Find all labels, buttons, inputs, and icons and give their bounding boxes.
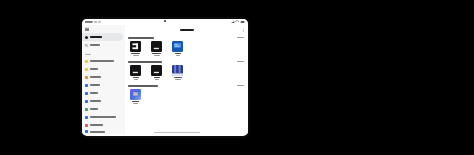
button[interactable]: Open navigation menu xyxy=(82,25,125,33)
button[interactable] xyxy=(171,41,184,56)
button[interactable] xyxy=(150,65,163,80)
button[interactable] xyxy=(82,57,123,65)
button[interactable] xyxy=(82,73,123,81)
button[interactable] xyxy=(82,97,123,105)
button[interactable] xyxy=(236,84,245,87)
button[interactable] xyxy=(82,33,123,41)
button[interactable] xyxy=(171,65,184,80)
button[interactable] xyxy=(236,36,245,39)
button[interactable] xyxy=(150,41,163,56)
button[interactable] xyxy=(82,129,123,134)
button[interactable] xyxy=(82,65,123,73)
button[interactable] xyxy=(236,60,245,63)
button[interactable] xyxy=(82,41,123,49)
button[interactable]: More options xyxy=(241,28,245,32)
button[interactable] xyxy=(129,41,142,56)
button[interactable] xyxy=(82,113,123,121)
button[interactable] xyxy=(129,65,142,80)
button[interactable] xyxy=(82,81,123,89)
button[interactable] xyxy=(82,89,123,97)
button[interactable] xyxy=(82,105,123,113)
button[interactable] xyxy=(82,121,123,129)
button[interactable] xyxy=(129,89,142,104)
